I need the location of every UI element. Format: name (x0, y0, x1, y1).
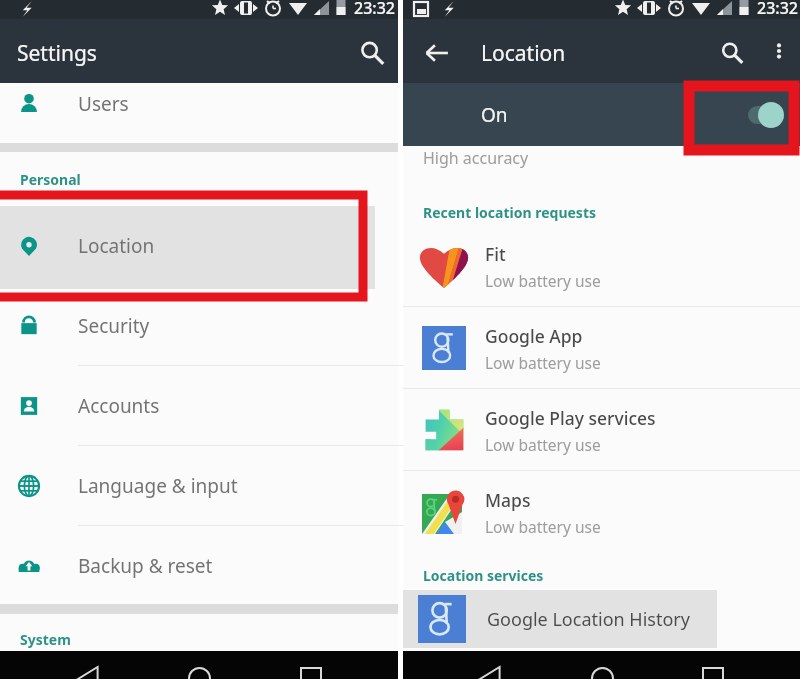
staticText: Fit (485, 242, 506, 266)
staticText: Low battery use (485, 270, 601, 291)
button[interactable]: Users (0, 83, 398, 125)
button[interactable]: More options (757, 29, 800, 73)
button[interactable]: Location (0, 206, 398, 286)
staticText: 23:32 (757, 0, 798, 16)
staticText: Users (78, 91, 129, 117)
staticText: Recent location requests (423, 203, 596, 222)
staticText: Google Play services (485, 406, 656, 430)
button[interactable]: Home (175, 651, 223, 679)
button[interactable]: Accounts (0, 366, 398, 446)
button[interactable]: Search (348, 29, 396, 77)
button[interactable]: Back (64, 651, 112, 679)
button[interactable]: Maps (403, 471, 800, 553)
button[interactable]: Back (413, 29, 461, 77)
button[interactable]: Back (466, 651, 514, 679)
button[interactable]: Security (0, 286, 398, 366)
staticText: Language & input (78, 473, 238, 499)
staticText: Google Location History (487, 607, 690, 632)
staticText: Backup & reset (78, 553, 213, 579)
button[interactable]: Home (578, 651, 626, 679)
staticText: Personal (20, 170, 81, 189)
button[interactable]: Recent apps (287, 651, 335, 679)
button[interactable]: Google Play services (403, 389, 800, 471)
staticText: System (20, 630, 71, 649)
staticText: On (481, 102, 508, 128)
button[interactable]: Google App (403, 307, 800, 389)
button[interactable]: Recent apps (689, 651, 737, 679)
button[interactable]: Language & input (0, 446, 398, 526)
staticText: Google App (485, 324, 583, 348)
staticText: Low battery use (485, 434, 601, 455)
button[interactable]: Search (708, 29, 756, 77)
staticText: Accounts (78, 393, 160, 419)
staticText: Location services (423, 566, 544, 585)
button[interactable]: On (403, 83, 800, 146)
staticText: Security (78, 313, 150, 339)
staticText: Maps (485, 488, 531, 512)
button[interactable]: Fit (403, 225, 800, 307)
staticText: High accuracy (423, 147, 529, 169)
staticText: Location (481, 39, 566, 68)
staticText: 23:32 (354, 0, 395, 16)
staticText: Low battery use (485, 352, 601, 373)
button[interactable]: Backup & reset (0, 526, 398, 606)
staticText: Low battery use (485, 516, 601, 537)
staticText: Settings (17, 39, 97, 68)
button[interactable]: Google Location History (403, 590, 800, 648)
staticText: Location (78, 233, 155, 259)
